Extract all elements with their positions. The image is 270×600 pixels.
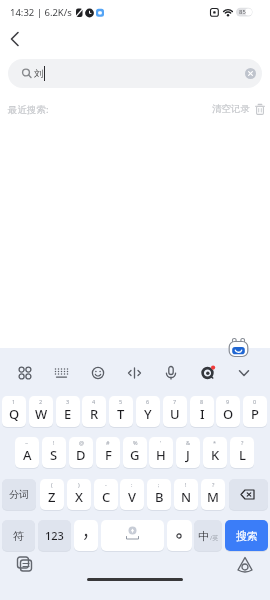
staticText: 刘 bbox=[34, 68, 44, 80]
staticText: P bbox=[251, 405, 259, 423]
staticText: C bbox=[102, 488, 111, 506]
staticText: 4 bbox=[92, 398, 96, 405]
staticText: ) bbox=[78, 481, 80, 488]
button[interactable]: 清空记录 bbox=[212, 100, 266, 118]
staticText: 9 bbox=[226, 398, 230, 405]
button[interactable] bbox=[167, 520, 192, 551]
staticText: % bbox=[133, 439, 138, 446]
button[interactable]: ? bbox=[201, 479, 225, 510]
staticText: G bbox=[130, 446, 140, 464]
button[interactable]: 7 bbox=[163, 396, 187, 427]
staticText: ? bbox=[212, 481, 215, 488]
button[interactable]: 分词 bbox=[2, 479, 36, 510]
staticText: 1 bbox=[12, 398, 16, 405]
button[interactable]: & bbox=[176, 437, 200, 468]
button[interactable] bbox=[194, 359, 222, 387]
staticText: 8 bbox=[200, 398, 204, 405]
staticText: E bbox=[64, 405, 72, 423]
staticText: 123 bbox=[45, 528, 64, 543]
staticText: Y bbox=[144, 405, 152, 423]
staticText: S bbox=[50, 446, 58, 464]
button[interactable]: # bbox=[96, 437, 120, 468]
button[interactable]: 5 bbox=[109, 396, 133, 427]
staticText: W bbox=[35, 405, 48, 423]
button[interactable]: 8 bbox=[190, 396, 214, 427]
staticText: J bbox=[186, 446, 190, 464]
button[interactable] bbox=[121, 359, 149, 387]
button[interactable] bbox=[14, 554, 36, 576]
staticText: 2 bbox=[39, 398, 43, 405]
button[interactable]: % bbox=[123, 437, 147, 468]
staticText: & bbox=[186, 439, 191, 446]
staticText: 85 bbox=[239, 8, 246, 16]
button[interactable]: ; bbox=[147, 479, 171, 510]
staticText: R bbox=[90, 405, 99, 423]
staticText: 14:32 | 6.2K/s bbox=[10, 6, 72, 19]
button[interactable]: 搜索 bbox=[225, 520, 268, 551]
button[interactable]: 0 bbox=[243, 396, 267, 427]
staticText: ' bbox=[160, 439, 162, 446]
button[interactable] bbox=[245, 68, 256, 79]
button[interactable] bbox=[157, 359, 185, 387]
button[interactable] bbox=[84, 359, 112, 387]
button[interactable]: 123 bbox=[38, 520, 71, 551]
staticText: D bbox=[76, 446, 86, 464]
button[interactable]: 6 bbox=[136, 396, 160, 427]
button[interactable]: 符 bbox=[2, 520, 35, 551]
button[interactable]: 1 bbox=[2, 396, 26, 427]
staticText: X bbox=[75, 488, 83, 506]
button[interactable]: 刘 bbox=[8, 59, 262, 88]
staticText: 3 bbox=[66, 398, 70, 405]
staticText: - bbox=[105, 481, 107, 488]
staticText: N bbox=[181, 488, 192, 506]
button[interactable]: 4 bbox=[82, 396, 106, 427]
staticText: : bbox=[131, 481, 133, 488]
button[interactable]: : bbox=[120, 479, 144, 510]
staticText: 6 bbox=[146, 398, 150, 405]
staticText: @ bbox=[79, 439, 84, 446]
staticText: O bbox=[223, 405, 234, 423]
staticText: T bbox=[117, 405, 125, 423]
button[interactable] bbox=[230, 359, 258, 387]
staticText: Z bbox=[48, 488, 56, 506]
staticText: 符 bbox=[13, 529, 24, 543]
button[interactable] bbox=[11, 359, 39, 387]
staticText: ! bbox=[53, 439, 55, 446]
button[interactable] bbox=[228, 337, 249, 358]
button[interactable]: - bbox=[94, 479, 118, 510]
staticText: B bbox=[155, 488, 164, 506]
staticText: ! bbox=[185, 481, 187, 488]
staticText: 清空记录 bbox=[212, 103, 250, 115]
staticText: 7 bbox=[173, 398, 177, 405]
staticText: U bbox=[170, 405, 180, 423]
staticText: K bbox=[211, 446, 220, 464]
button[interactable] bbox=[194, 520, 222, 551]
staticText: Q bbox=[9, 405, 20, 423]
button[interactable]: ! bbox=[42, 437, 66, 468]
button[interactable] bbox=[229, 479, 268, 510]
button[interactable]: 9 bbox=[216, 396, 240, 427]
button[interactable]: ( bbox=[40, 479, 64, 510]
button[interactable] bbox=[74, 520, 98, 551]
staticText: * bbox=[213, 439, 217, 446]
staticText: A bbox=[23, 446, 32, 464]
staticText: F bbox=[105, 446, 112, 464]
button[interactable] bbox=[4, 28, 26, 50]
button[interactable] bbox=[101, 520, 164, 551]
button[interactable]: 2 bbox=[29, 396, 53, 427]
button[interactable]: ~ bbox=[15, 437, 39, 468]
button[interactable]: 3 bbox=[56, 396, 80, 427]
button[interactable]: ? bbox=[230, 437, 254, 468]
button[interactable] bbox=[234, 554, 256, 576]
button[interactable]: ! bbox=[174, 479, 198, 510]
button[interactable]: * bbox=[203, 437, 227, 468]
staticText: 5 bbox=[119, 398, 123, 405]
button[interactable]: ' bbox=[149, 437, 173, 468]
staticText: 0 bbox=[253, 398, 257, 405]
staticText: ( bbox=[51, 481, 53, 488]
button[interactable] bbox=[48, 359, 76, 387]
staticText: ~ bbox=[25, 439, 29, 446]
button[interactable]: ) bbox=[67, 479, 91, 510]
staticText: 最近搜索: bbox=[8, 103, 49, 116]
button[interactable]: @ bbox=[69, 437, 93, 468]
